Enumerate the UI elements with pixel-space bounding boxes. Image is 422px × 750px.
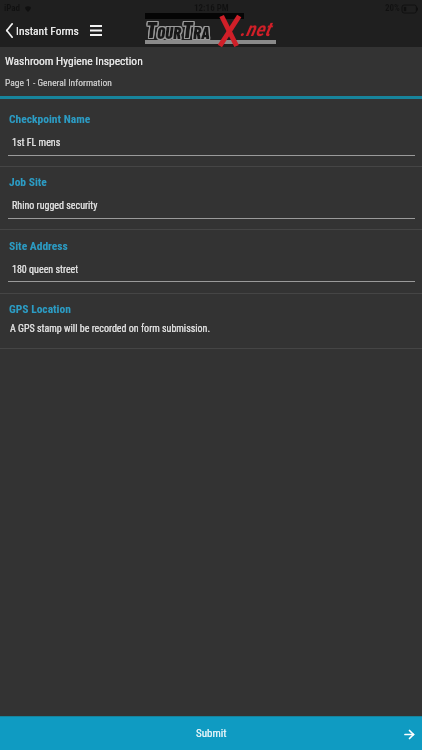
staticText: T	[182, 17, 193, 43]
staticText: RA	[194, 22, 211, 42]
staticText: 1st FL mens	[12, 137, 61, 149]
staticText: T	[145, 15, 156, 41]
staticText: Instant Forms	[16, 24, 79, 37]
staticText: OUR	[156, 23, 180, 43]
staticText: RA	[193, 23, 210, 43]
staticText: RA	[193, 21, 210, 41]
staticText: T	[181, 16, 192, 42]
staticText: Site Address	[9, 239, 68, 252]
staticText: RA	[192, 23, 209, 43]
button[interactable]: Job Site	[0, 167, 422, 230]
staticText: iPad	[4, 3, 21, 14]
staticText: OUR	[156, 22, 180, 42]
staticText: OUR	[157, 22, 181, 42]
staticText: Page 1 - General Information	[5, 77, 112, 88]
button[interactable]: GPS Location	[0, 294, 422, 349]
staticText: OUR	[156, 21, 180, 41]
button[interactable]: Checkpoint Name	[0, 98, 422, 167]
staticText: T	[183, 16, 194, 42]
button[interactable]: Menu	[86, 20, 106, 40]
button[interactable]: Instant Forms	[0, 23, 81, 38]
button[interactable]: Site Address	[0, 230, 422, 294]
staticText: T	[183, 15, 194, 41]
staticText: OUR	[158, 21, 182, 41]
staticText: OUR	[158, 23, 182, 43]
staticText: OUR	[158, 22, 182, 42]
staticText: Submit	[196, 727, 227, 740]
staticText: RA	[192, 22, 209, 42]
staticText: T	[183, 17, 194, 43]
staticText: 12:16 PM	[194, 3, 229, 14]
staticText: GPS Location	[9, 302, 71, 315]
staticText: T	[181, 15, 192, 41]
staticText: Washroom Hygiene Inspection	[5, 54, 143, 67]
staticText: T	[147, 17, 158, 43]
staticText: T	[182, 15, 193, 41]
staticText: Job Site	[9, 175, 47, 188]
staticText: T	[147, 16, 158, 42]
staticText: T	[181, 17, 192, 43]
staticText: OUR	[157, 23, 181, 43]
staticText: T	[146, 17, 157, 43]
staticText: T	[146, 15, 157, 41]
staticText: RA	[193, 22, 210, 42]
staticText: 20%	[385, 3, 400, 14]
staticText: Checkpoint Name	[9, 112, 91, 125]
button[interactable]: Submit	[0, 717, 422, 750]
other: Next page	[399, 724, 419, 744]
staticText: A GPS stamp will be recorded on form sub…	[10, 323, 211, 335]
staticText: RA	[192, 21, 209, 41]
staticText: T	[146, 16, 157, 42]
staticText: Rhino rugged security	[12, 200, 98, 212]
staticText: RA	[194, 21, 211, 41]
staticText: 180 queen street	[12, 264, 79, 276]
staticText: T	[147, 15, 158, 41]
staticText: .net	[240, 17, 271, 40]
staticText: T	[182, 16, 193, 42]
staticText: T	[145, 17, 156, 43]
staticText: OUR	[157, 21, 181, 41]
staticText: T	[145, 16, 156, 42]
staticText: RA	[194, 23, 211, 43]
